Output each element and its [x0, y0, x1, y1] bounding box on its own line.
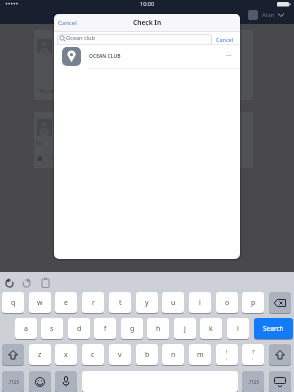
- button[interactable]: [57, 34, 212, 45]
- staticText: b: [145, 350, 150, 360]
- button[interactable]: u: [162, 292, 184, 313]
- button[interactable]: c: [82, 344, 104, 365]
- button[interactable]: h: [147, 318, 169, 339]
- staticText: u: [171, 298, 176, 308]
- staticText: Hi: [36, 140, 56, 148]
- button[interactable]: q: [2, 292, 24, 313]
- button[interactable]: k: [200, 318, 222, 339]
- staticText: Ocean club: [66, 34, 95, 41]
- staticText: y: [145, 298, 149, 308]
- staticText: j: [184, 324, 186, 334]
- button[interactable]: !: [216, 344, 238, 365]
- staticText: .: [252, 355, 254, 362]
- staticText: Check In: [133, 18, 162, 27]
- staticText: Cancel: [58, 19, 77, 27]
- button[interactable]: [269, 371, 291, 392]
- staticText: ?: [252, 348, 255, 356]
- button[interactable]: Cancel: [212, 32, 238, 46]
- button[interactable]: j: [174, 318, 196, 339]
- button[interactable]: b: [136, 344, 158, 365]
- button[interactable]: y: [136, 292, 158, 313]
- staticText: q: [11, 298, 16, 308]
- staticText: w: [37, 298, 43, 308]
- button[interactable]: t: [109, 292, 131, 313]
- button[interactable]: .?123: [2, 371, 24, 392]
- staticText: i: [199, 298, 201, 308]
- button[interactable]: [2, 344, 24, 365]
- staticText: v: [118, 350, 122, 360]
- staticText: h: [156, 324, 161, 334]
- staticText: a: [24, 324, 28, 334]
- staticText: l: [237, 324, 239, 334]
- button[interactable]: r: [82, 292, 104, 313]
- button[interactable]: g: [121, 318, 143, 339]
- staticText: z: [38, 350, 42, 360]
- staticText: Search: [263, 324, 284, 333]
- staticText: x: [64, 350, 68, 360]
- button[interactable]: a: [15, 318, 37, 339]
- staticText: f: [104, 324, 107, 334]
- staticText: t: [119, 298, 122, 308]
- staticText: d: [77, 324, 82, 334]
- staticText: e: [64, 298, 68, 308]
- button[interactable]: ?: [242, 344, 264, 365]
- staticText: k: [209, 324, 213, 334]
- button[interactable]: n: [162, 344, 184, 365]
- button[interactable]: i: [189, 292, 211, 313]
- staticText: !: [226, 348, 228, 356]
- staticText: r: [92, 298, 95, 308]
- staticText: Like: [48, 155, 68, 163]
- button[interactable]: [55, 371, 77, 392]
- button[interactable]: [269, 292, 291, 313]
- button[interactable]: [29, 371, 51, 392]
- button[interactable]: OCEAN CLUB: [54, 45, 240, 68]
- button[interactable]: l: [227, 318, 249, 339]
- button[interactable]: s: [41, 318, 63, 339]
- staticText: o: [225, 298, 230, 308]
- button[interactable]: p: [242, 292, 264, 313]
- staticText: ...: [226, 49, 232, 59]
- staticText: 10:00: [140, 0, 162, 7]
- button[interactable]: .?123: [242, 371, 264, 392]
- button[interactable]: m: [189, 344, 211, 365]
- staticText: .?123: [8, 379, 19, 385]
- staticText: s: [50, 324, 54, 334]
- button[interactable]: [269, 344, 291, 365]
- button[interactable]: e: [55, 292, 77, 313]
- button[interactable]: o: [216, 292, 238, 313]
- staticText: Alan: [262, 11, 282, 20]
- button[interactable]: z: [29, 344, 51, 365]
- staticText: c: [91, 350, 95, 360]
- staticText: You were at OCEAN CLUB: [39, 88, 159, 96]
- staticText: g: [130, 324, 135, 334]
- button[interactable]: x: [55, 344, 77, 365]
- staticText: OCEAN CLUB: [89, 53, 121, 60]
- button[interactable]: f: [94, 318, 116, 339]
- staticText: m: [197, 350, 204, 360]
- staticText: .?123: [248, 379, 259, 385]
- button[interactable]: w: [29, 292, 51, 313]
- button[interactable]: d: [68, 318, 90, 339]
- staticText: ,: [226, 355, 228, 362]
- button[interactable]: Cancel: [58, 16, 86, 29]
- staticText: Cancel: [216, 36, 234, 43]
- staticText: p: [251, 298, 256, 308]
- staticText: n: [171, 350, 176, 360]
- button[interactable]: v: [109, 344, 131, 365]
- button[interactable]: Search: [254, 318, 293, 339]
